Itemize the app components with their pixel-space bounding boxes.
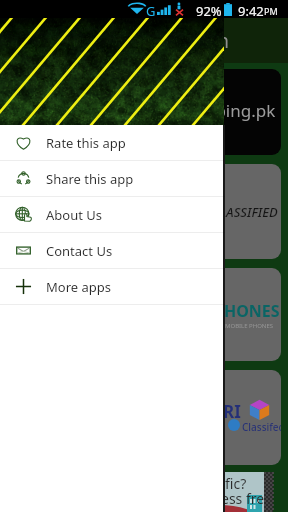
button[interactable]: RI	[7, 370, 281, 465]
button[interactable]: CLASSIFIED	[7, 164, 281, 259]
staticText: MOBILE PHONES	[225, 322, 274, 330]
staticText: PM	[264, 5, 278, 17]
staticText: G	[146, 2, 156, 20]
button[interactable]: PHONES	[7, 268, 281, 361]
staticText: 92%	[196, 2, 222, 20]
button[interactable]: More apps	[0, 269, 225, 304]
staticText: More apps	[46, 278, 111, 296]
staticText: Share this app	[46, 170, 134, 188]
button[interactable]: shopping.pk	[7, 69, 281, 155]
button[interactable]: Share this app	[0, 161, 225, 196]
staticText: RI	[223, 400, 241, 423]
staticText: PHONES	[214, 300, 280, 322]
button[interactable]: fic?	[0, 472, 288, 512]
staticText: ess free	[221, 489, 273, 508]
button[interactable]: Contact Us	[0, 233, 225, 268]
staticText: fic?	[225, 474, 247, 493]
button[interactable]: Rate this app	[0, 125, 225, 160]
staticText: shopping.pk	[176, 99, 276, 122]
staticText: Classifeds	[242, 420, 281, 434]
staticText: About Us	[46, 206, 103, 224]
button[interactable]: Application	[0, 18, 288, 63]
staticText: Contact Us	[46, 242, 113, 260]
staticText: Application	[129, 28, 230, 54]
staticText: 9:42	[238, 2, 264, 20]
button[interactable]: About Us	[0, 197, 225, 232]
staticText: CLASSIFIED	[212, 203, 278, 221]
staticText: Rate this app	[46, 134, 126, 152]
